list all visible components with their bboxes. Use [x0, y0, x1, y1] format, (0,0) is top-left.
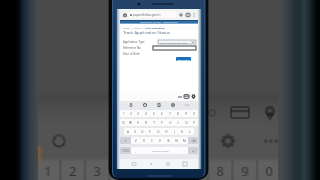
button[interactable]: Home — [121, 11, 128, 18]
button[interactable]: Recents — [181, 160, 188, 167]
button[interactable]: S — [131, 128, 138, 135]
button[interactable]: Settings — [170, 102, 176, 108]
staticText: 8 — [217, 162, 225, 180]
button[interactable]: V — [156, 137, 164, 144]
button[interactable]: 2 — [127, 110, 134, 117]
button[interactable]: A — [124, 128, 131, 135]
button[interactable]: T — [150, 119, 158, 126]
button[interactable]: 6 — [158, 110, 166, 117]
button[interactable]: Stickers — [142, 102, 148, 108]
button[interactable]: Z — [131, 137, 140, 144]
staticText: H — [165, 130, 168, 134]
button[interactable]: N — [172, 137, 180, 144]
button[interactable]: O — [182, 119, 190, 126]
staticText: 0 — [265, 162, 273, 180]
button[interactable]: B — [164, 137, 172, 144]
staticText: 7 — [191, 162, 199, 180]
staticText: 6 — [166, 162, 174, 180]
button[interactable]: P — [190, 119, 198, 126]
staticText: D — [141, 130, 144, 134]
staticText: N — [175, 139, 178, 143]
staticText: T — [153, 121, 155, 125]
staticText: 5 — [142, 162, 150, 180]
button[interactable]: 9 — [182, 110, 190, 117]
button[interactable]: 0 — [190, 110, 198, 117]
staticText: 3 — [137, 112, 139, 116]
staticText: E — [137, 121, 139, 125]
button[interactable]: U — [166, 119, 174, 126]
button[interactable]: F — [146, 128, 154, 135]
button[interactable]: Q — [120, 119, 127, 126]
button[interactable]: More options — [191, 12, 197, 18]
button[interactable]: X — [140, 137, 148, 144]
button[interactable]: Tabs — [184, 11, 191, 18]
staticText: 3 — [94, 162, 102, 180]
staticText: 7 — [169, 112, 171, 116]
button[interactable]: E — [134, 119, 142, 126]
button[interactable]: I — [174, 119, 182, 126]
button[interactable]: H — [162, 128, 170, 135]
button[interactable]: More — [184, 102, 190, 108]
staticText: Z — [135, 139, 137, 143]
staticText: English (India) — [152, 149, 169, 152]
button[interactable]: L — [186, 128, 194, 135]
button[interactable]: Clipboard — [156, 102, 162, 108]
staticText: O — [185, 121, 188, 125]
button[interactable]: Home — [164, 160, 171, 167]
staticText: Application Type — [123, 40, 145, 44]
staticText: 2 — [69, 162, 77, 180]
staticText: ?123 — [122, 149, 129, 153]
button[interactable]: 7 — [166, 110, 174, 117]
staticText: 6 — [168, 162, 176, 180]
button[interactable]: 8 — [174, 110, 182, 117]
staticText: 0 — [266, 162, 274, 180]
button[interactable]: Saved cards — [183, 93, 190, 100]
button[interactable]: . — [181, 147, 188, 154]
staticText: 1 — [43, 162, 51, 180]
button[interactable]: K — [178, 128, 186, 135]
button[interactable]: ⇧ — [120, 137, 131, 144]
button[interactable]: Voice input — [128, 102, 134, 108]
button[interactable]: ?123 — [120, 147, 131, 154]
staticText: 4 — [118, 162, 126, 180]
staticText: ⌫ — [191, 139, 196, 142]
button[interactable]: ⌫ — [188, 137, 198, 144]
button[interactable]: R — [142, 119, 150, 126]
button[interactable]: New tab — [177, 11, 184, 18]
staticText: 5 — [143, 162, 151, 180]
button[interactable]: Back — [147, 160, 154, 167]
button[interactable]: 3 — [134, 110, 142, 117]
button[interactable]: J — [170, 128, 178, 135]
button[interactable]: D — [138, 128, 146, 135]
staticText: 4 — [119, 162, 127, 180]
staticText: 0 — [265, 162, 273, 180]
button[interactable] — [153, 46, 196, 50]
button[interactable]: 1 — [120, 110, 127, 117]
button[interactable]: 5 — [150, 110, 158, 117]
staticText: View Status — [177, 58, 190, 61]
button[interactable]: C — [148, 137, 156, 144]
button[interactable]: payasthitha.gov.in — [128, 11, 177, 18]
button[interactable]: Keyboard — [130, 160, 137, 167]
button[interactable]: M — [180, 137, 188, 144]
button[interactable]: , — [131, 147, 139, 154]
staticText: 6 — [167, 162, 175, 180]
staticText: 3 — [93, 162, 101, 180]
button[interactable]: English (India) — [139, 147, 181, 154]
button[interactable]: Suggestions — [176, 93, 183, 100]
button[interactable]: Addresses — [190, 93, 197, 100]
staticText: A — [127, 130, 129, 134]
button[interactable]: View Status — [176, 57, 191, 61]
button[interactable]: Y — [158, 119, 166, 126]
button[interactable]: W — [127, 119, 134, 126]
staticText: / — [141, 27, 145, 30]
staticText: X — [143, 139, 145, 143]
button[interactable]: 4 — [142, 110, 150, 117]
staticText: B — [167, 139, 170, 143]
button[interactable]: ↵ — [188, 147, 198, 154]
staticText: Reference No — [123, 46, 141, 50]
staticText: Track Application — [145, 27, 165, 30]
staticText: 1 — [45, 162, 53, 180]
button[interactable]: Select Application Type — [158, 40, 196, 44]
button[interactable]: G — [154, 128, 162, 135]
